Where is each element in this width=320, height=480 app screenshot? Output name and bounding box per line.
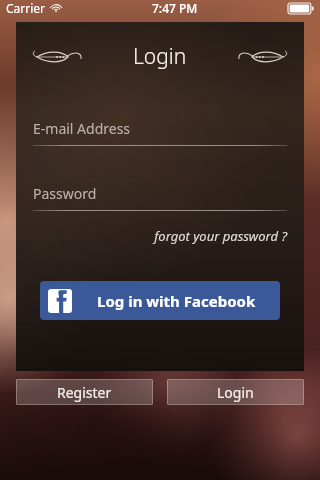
button[interactable]: Password (33, 184, 287, 211)
staticText: Carrier (6, 0, 46, 16)
button[interactable]: Log in with Facebook (40, 281, 280, 320)
button[interactable]: forgot your password ? (154, 227, 287, 245)
staticText: Login (217, 383, 254, 402)
other: Decoration (32, 47, 82, 67)
staticText: Register (57, 383, 112, 402)
staticText: Login (133, 42, 187, 71)
button[interactable]: Login (167, 379, 304, 405)
staticText: 7:47 PM (152, 0, 198, 16)
staticText: Password (33, 184, 97, 203)
staticText: Log in with Facebook (97, 291, 256, 311)
staticText: E-mail Address (33, 119, 131, 138)
other: Decoration (238, 47, 288, 67)
button[interactable]: Register (16, 379, 153, 405)
button[interactable]: E-mail Address (33, 119, 287, 146)
